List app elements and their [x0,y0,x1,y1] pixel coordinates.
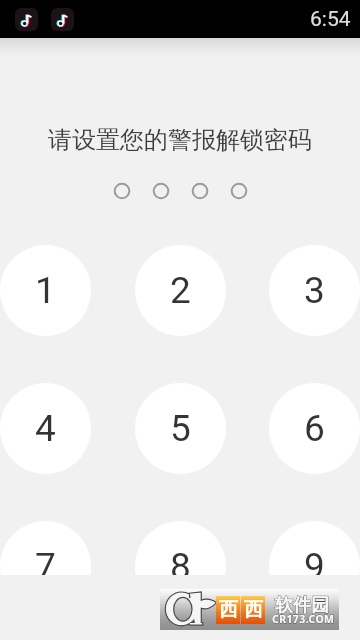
button[interactable]: 9 [269,521,360,575]
button[interactable]: 8 [135,521,226,575]
button[interactable]: 6 [269,383,360,474]
other: TikTok notification [15,8,38,31]
staticText: 6:54 [310,7,351,32]
staticText: 请设置您的警报解锁密码 [0,125,360,155]
other: TikTok notification [51,8,74,31]
staticText: 7 [35,545,56,575]
staticText: 2 [170,269,191,312]
button[interactable]: 3 [269,245,360,336]
staticText: 8 [170,545,191,575]
button[interactable]: 4 [0,383,91,474]
staticText: 西 [219,598,238,622]
staticText: 1 [35,269,56,312]
staticText: 5 [170,407,191,450]
staticText: CR173.COM [272,612,335,626]
button[interactable]: 5 [135,383,226,474]
staticText: 软件园 [275,594,329,617]
button[interactable]: 1 [0,245,91,336]
staticText: 6 [304,407,325,450]
button[interactable]: 7 [0,521,91,575]
staticText: 软件园 [275,594,329,617]
staticText: CR173.COM [272,612,335,626]
staticText: 9 [304,545,325,575]
staticText: 西 [244,598,263,622]
button[interactable]: 2 [135,245,226,336]
staticText: 3 [304,269,325,312]
staticText: 4 [35,407,56,450]
